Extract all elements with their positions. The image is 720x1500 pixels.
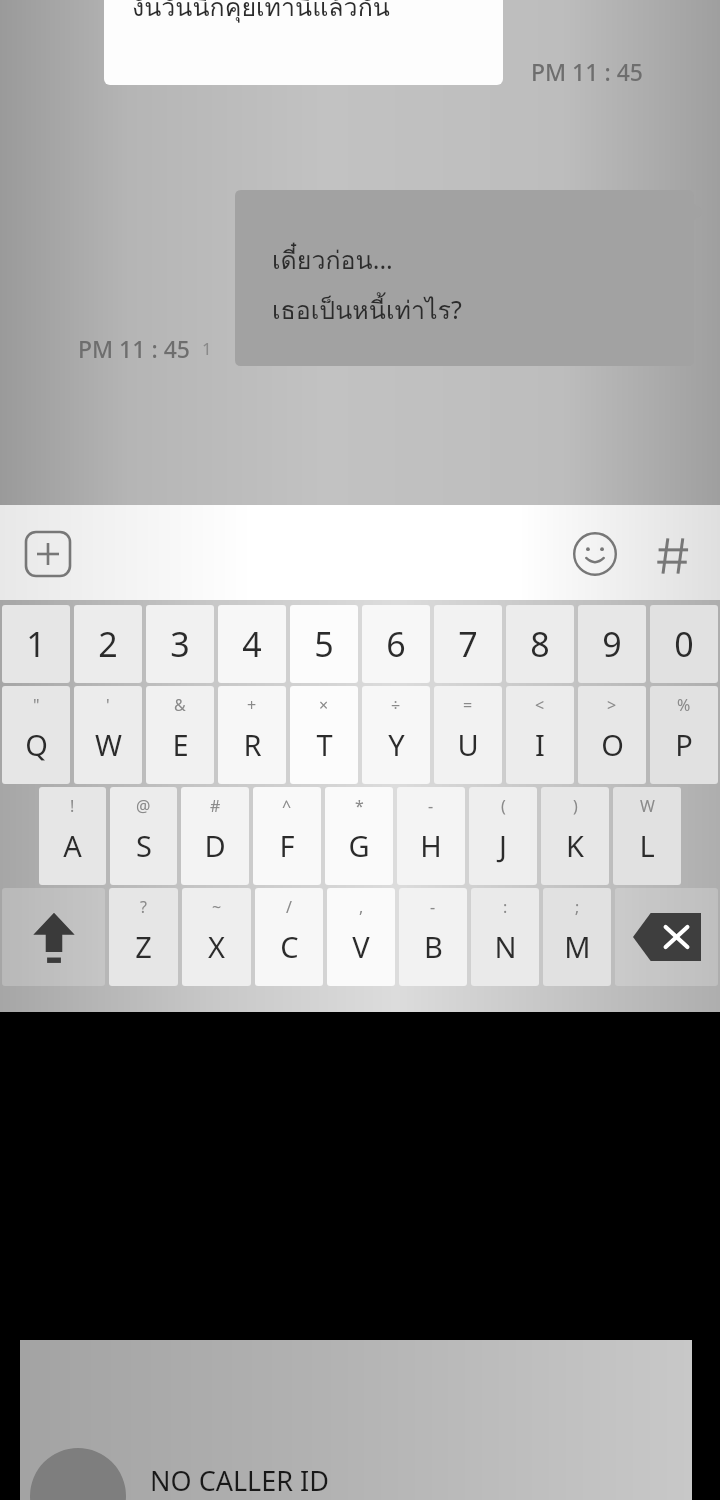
staticText: B	[424, 927, 443, 966]
staticText: ^	[282, 795, 292, 817]
button[interactable]: 7	[434, 605, 502, 683]
staticText: A	[63, 826, 82, 865]
staticText: ÷	[391, 694, 401, 716]
staticText: ,	[359, 896, 364, 918]
staticText: L	[639, 826, 655, 865]
button[interactable]: )	[541, 787, 609, 885]
staticText: X	[208, 927, 225, 966]
staticText: I	[535, 725, 545, 764]
button[interactable]: %	[650, 686, 718, 784]
staticText: H	[420, 826, 442, 865]
staticText: 3	[170, 621, 190, 667]
button[interactable]: 1	[2, 605, 70, 683]
staticText: C	[280, 927, 299, 966]
button[interactable]: 4	[218, 605, 286, 683]
button[interactable]: ~	[182, 888, 251, 986]
staticText: N	[494, 927, 517, 966]
staticText: J	[499, 826, 507, 865]
button[interactable]: ^	[253, 787, 321, 885]
button[interactable]: (	[469, 787, 537, 885]
button[interactable]: -	[399, 888, 467, 986]
staticText: 5	[314, 621, 334, 667]
button[interactable]: 5	[290, 605, 358, 683]
button[interactable]: Emoji	[573, 532, 617, 576]
staticText: V	[352, 927, 370, 966]
staticText: #	[210, 795, 221, 817]
staticText: G	[348, 826, 370, 865]
staticText: R	[243, 725, 262, 764]
staticText: :	[503, 896, 508, 918]
button[interactable]: <	[506, 686, 574, 784]
staticText: )	[573, 795, 578, 817]
staticText: O	[601, 725, 624, 764]
staticText: "	[33, 694, 40, 716]
staticText: 0	[674, 621, 694, 667]
button[interactable]: #	[181, 787, 249, 885]
staticText: ?	[140, 896, 147, 918]
button[interactable]: @	[110, 787, 177, 885]
staticText: -	[428, 795, 434, 817]
button[interactable]: 8	[506, 605, 574, 683]
button[interactable]: Add attachment	[26, 532, 70, 576]
staticText: K	[566, 826, 584, 865]
staticText: W	[640, 795, 655, 817]
button[interactable]: >	[578, 686, 646, 784]
staticText: 4	[242, 621, 262, 667]
staticText: >	[607, 694, 617, 716]
staticText: E	[172, 725, 189, 764]
staticText: *	[355, 795, 364, 817]
staticText: Z	[135, 927, 152, 966]
staticText: '	[106, 694, 110, 716]
staticText: เดี๋ยวก่อน...	[272, 240, 393, 280]
button[interactable]: 2	[74, 605, 142, 683]
button[interactable]: ,	[327, 888, 395, 986]
staticText: S	[136, 826, 152, 865]
staticText: !	[70, 795, 75, 817]
staticText: ×	[319, 694, 329, 716]
staticText: D	[204, 826, 226, 865]
staticText: ~	[212, 896, 222, 918]
staticText: PM 11 : 45	[78, 333, 190, 364]
button[interactable]: 6	[362, 605, 430, 683]
button[interactable]: -	[397, 787, 465, 885]
staticText: งั้นวันนี้ก็คุยเท่านี้แล้วกัน	[132, 0, 390, 27]
staticText: F	[279, 826, 295, 865]
staticText: %	[677, 694, 691, 716]
staticText: P	[675, 725, 693, 764]
button[interactable]: W	[613, 787, 681, 885]
button[interactable]: Hashtag	[652, 534, 696, 578]
button[interactable]: &	[146, 686, 214, 784]
button[interactable]: ÷	[362, 686, 430, 784]
button[interactable]: ;	[543, 888, 611, 986]
button[interactable]: 0	[650, 605, 718, 683]
button[interactable]: +	[218, 686, 286, 784]
staticText: ;	[575, 896, 580, 918]
button[interactable]: "	[2, 686, 70, 784]
staticText: NO CALLER ID	[150, 1462, 329, 1499]
staticText: U	[457, 725, 479, 764]
button[interactable]: ×	[290, 686, 358, 784]
staticText: PM 11 : 45	[531, 56, 643, 87]
staticText: @	[136, 795, 151, 817]
button[interactable]: ?	[109, 888, 178, 986]
button[interactable]: Backspace	[615, 888, 718, 986]
button[interactable]: :	[471, 888, 539, 986]
staticText: W	[95, 725, 122, 764]
button[interactable]: '	[74, 686, 142, 784]
staticText: 2	[98, 621, 118, 667]
button[interactable]: =	[434, 686, 502, 784]
staticText: (	[501, 795, 506, 817]
button[interactable]: 9	[578, 605, 646, 683]
staticText: -	[430, 896, 436, 918]
staticText: =	[463, 694, 473, 716]
staticText: +	[247, 694, 257, 716]
staticText: T	[316, 725, 333, 764]
staticText: M	[564, 927, 591, 966]
button[interactable]: งั้นวันนี้ก็คุยเท่านี้แล้วกัน	[104, 0, 503, 85]
button[interactable]: /	[255, 888, 323, 986]
button[interactable]: !	[39, 787, 106, 885]
staticText: <	[535, 694, 545, 716]
button[interactable]: Shift	[2, 888, 105, 986]
button[interactable]: 3	[146, 605, 214, 683]
button[interactable]: *	[325, 787, 393, 885]
